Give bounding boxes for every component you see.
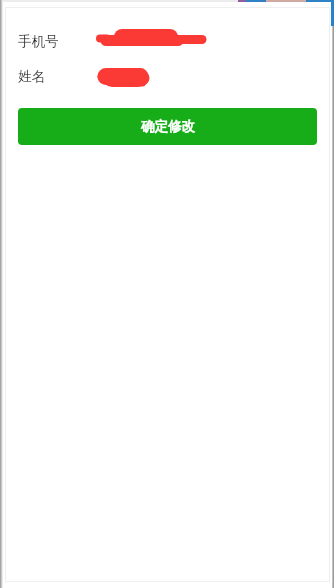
- staticText: 手机号: [18, 33, 59, 50]
- button[interactable]: 确定修改: [18, 108, 317, 145]
- button[interactable]: 姓名: [18, 63, 208, 89]
- button[interactable]: 手机号: [18, 28, 208, 54]
- staticText: 确定修改: [141, 118, 195, 135]
- staticText: 姓名: [18, 68, 45, 85]
- other: Redacted personal details: [0, 0, 334, 588]
